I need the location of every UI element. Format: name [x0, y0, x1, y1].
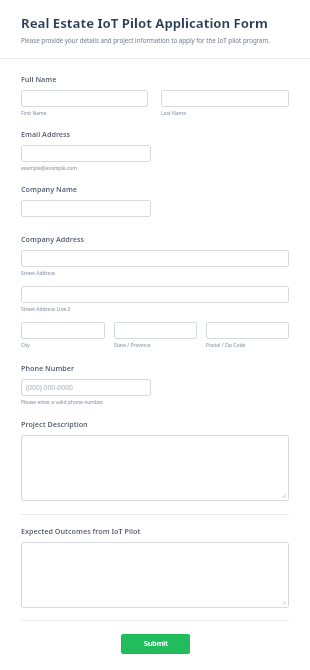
button[interactable]: Project Description: [21, 435, 289, 501]
button[interactable]: State / Province: [114, 322, 197, 339]
staticText: example@example.com: [21, 165, 77, 172]
staticText: Company Address: [21, 234, 85, 244]
staticText: Phone Number: [21, 363, 75, 373]
button[interactable]: Postal / Zip Code: [206, 322, 289, 339]
staticText: Postal / Zip Code: [206, 342, 246, 349]
staticText: Please provide your details and project …: [21, 36, 271, 44]
staticText: Street Address Line 2: [21, 306, 71, 313]
staticText: Company Name: [21, 184, 78, 194]
staticText: First Name: [21, 110, 47, 117]
staticText: Please enter a valid phone number.: [21, 399, 104, 406]
button[interactable]: City: [21, 322, 105, 339]
staticText: State / Province: [114, 342, 151, 349]
staticText: Street Address: [21, 270, 56, 277]
staticText: Last Name: [161, 110, 187, 117]
staticText: Submit: [144, 639, 168, 649]
button[interactable]: Submit: [121, 634, 190, 654]
button[interactable]: Email Address: [21, 145, 151, 162]
button[interactable]: Company Name: [21, 200, 151, 217]
staticText: City: [21, 342, 30, 349]
button[interactable]: Street Address: [21, 250, 289, 267]
button[interactable]: Expected Outcomes from IoT Pilot: [21, 542, 289, 608]
staticText: Project Description: [21, 419, 88, 429]
button[interactable]: Phone Number: [21, 379, 151, 396]
staticText: Email Address: [21, 129, 71, 139]
button[interactable]: Last Name: [161, 90, 289, 107]
button[interactable]: Street Address Line 2: [21, 286, 289, 303]
staticText: Expected Outcomes from IoT Pilot: [21, 526, 141, 536]
staticText: (000) 000-0000: [26, 383, 73, 392]
staticText: Full Name: [21, 74, 57, 84]
button[interactable]: First Name: [21, 90, 148, 107]
staticText: Real Estate IoT Pilot Application Form: [21, 14, 268, 32]
